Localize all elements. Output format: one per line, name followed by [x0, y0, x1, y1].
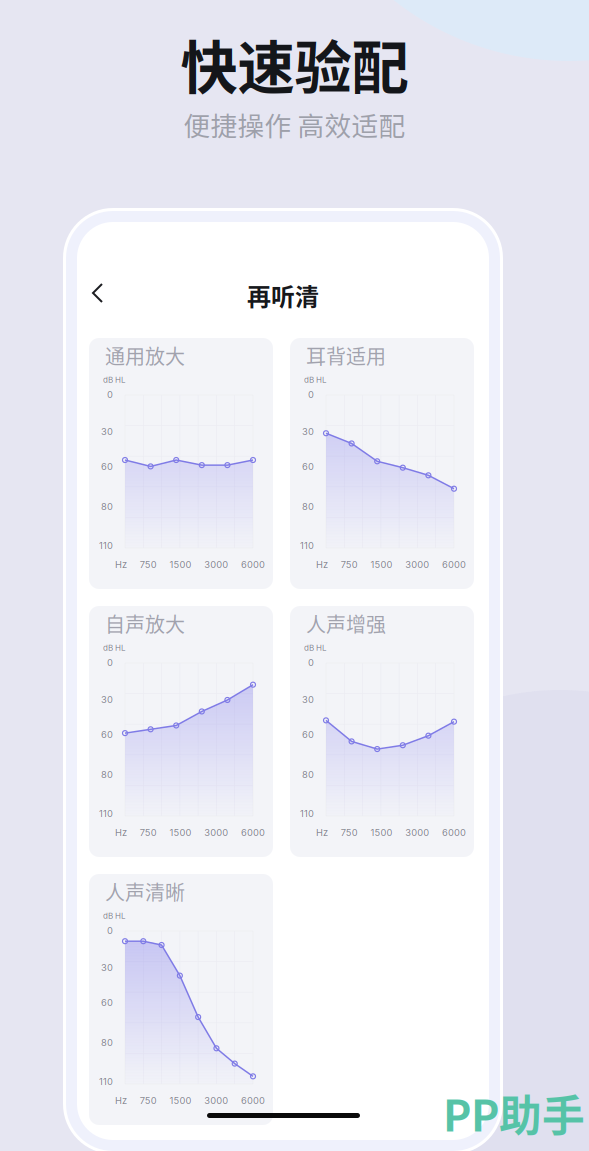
staticText: 6000	[241, 827, 265, 838]
staticText: Hz	[316, 827, 328, 838]
staticText: dB HL	[103, 911, 126, 921]
staticText: 750	[140, 1095, 157, 1106]
staticText: 3000	[204, 559, 228, 570]
staticText: 750	[341, 827, 358, 838]
staticText: Hz	[316, 559, 328, 570]
staticText: 0	[107, 925, 113, 936]
staticText: dB HL	[304, 375, 327, 385]
staticText: 60	[302, 729, 314, 740]
staticText: 30	[101, 694, 113, 705]
staticText: 0	[308, 389, 314, 400]
button[interactable]: Back	[82, 274, 113, 312]
button[interactable]: 人声增强	[290, 606, 474, 857]
staticText: 110	[99, 808, 113, 819]
staticText: 快速验配	[180, 22, 408, 105]
staticText: 0	[308, 657, 314, 668]
staticText: 0	[107, 389, 113, 400]
staticText: 1500	[169, 1095, 191, 1106]
button[interactable]: 通用放大	[89, 338, 273, 589]
staticText: 60	[101, 729, 113, 740]
staticText: 3000	[204, 1095, 228, 1106]
staticText: 6000	[241, 559, 265, 570]
staticText: 便捷操作 高效适配	[183, 105, 405, 144]
staticText: 通用放大	[105, 341, 185, 370]
staticText: 再听清	[247, 278, 319, 313]
staticText: 80	[101, 1037, 113, 1048]
staticText: 80	[101, 501, 113, 512]
staticText: 1500	[370, 827, 392, 838]
staticText: 1500	[169, 827, 191, 838]
staticText: 110	[300, 540, 314, 551]
staticText: 110	[99, 1076, 113, 1087]
staticText: dB HL	[103, 375, 126, 385]
staticText: 60	[302, 461, 314, 472]
staticText: Hz	[115, 559, 127, 570]
button[interactable]: 人声清晰	[89, 874, 273, 1125]
staticText: 80	[302, 501, 314, 512]
staticText: 30	[302, 426, 314, 437]
staticText: 30	[302, 694, 314, 705]
staticText: 6000	[241, 1095, 265, 1106]
staticText: 80	[302, 769, 314, 780]
button[interactable]: 自声放大	[89, 606, 273, 857]
staticText: 6000	[442, 559, 466, 570]
staticText: 1500	[370, 559, 392, 570]
staticText: 人声清晰	[105, 877, 185, 906]
staticText: 3000	[405, 559, 429, 570]
staticText: PP助手	[443, 1082, 585, 1144]
staticText: 3000	[405, 827, 429, 838]
staticText: 750	[341, 559, 358, 570]
staticText: 自声放大	[105, 609, 185, 638]
staticText: 耳背适用	[306, 341, 386, 370]
staticText: Hz	[115, 827, 127, 838]
staticText: dB HL	[304, 643, 327, 653]
staticText: Hz	[115, 1095, 127, 1106]
staticText: 人声增强	[306, 609, 386, 638]
staticText: 3000	[204, 827, 228, 838]
staticText: 750	[140, 827, 157, 838]
staticText: 80	[101, 769, 113, 780]
staticText: 1500	[169, 559, 191, 570]
staticText: 110	[99, 540, 113, 551]
staticText: 60	[101, 997, 113, 1008]
staticText: 30	[101, 962, 113, 973]
staticText: 750	[140, 559, 157, 570]
staticText: 110	[300, 808, 314, 819]
staticText: 0	[107, 657, 113, 668]
staticText: 30	[101, 426, 113, 437]
staticText: 6000	[442, 827, 466, 838]
staticText: 60	[101, 461, 113, 472]
button[interactable]: 耳背适用	[290, 338, 474, 589]
staticText: dB HL	[103, 643, 126, 653]
